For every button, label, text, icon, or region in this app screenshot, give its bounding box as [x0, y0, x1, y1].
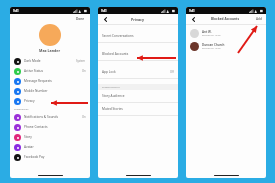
- button[interactable]: Story Audience: [98, 90, 178, 102]
- staticText: Dark Mode: [24, 59, 41, 63]
- staticText: STORIES PRIVACY: [102, 86, 121, 89]
- button[interactable]: Notifications & Sounds: [10, 112, 90, 122]
- staticText: Done: [76, 17, 85, 21]
- button[interactable]: Blocked Accounts: [98, 48, 178, 60]
- button[interactable]: Avatar: [10, 142, 90, 152]
- button[interactable]: Duncan Church: [186, 40, 266, 53]
- staticText: Mobile Number: [24, 89, 48, 93]
- staticText: Message Requests: [24, 79, 52, 83]
- button[interactable]: Ant W.: [186, 27, 266, 40]
- staticText: Notifications & Sounds: [24, 115, 59, 119]
- button[interactable]: Dark Mode: [10, 56, 90, 66]
- staticText: On: [82, 115, 86, 119]
- staticText: PREFERENCES: [14, 108, 29, 111]
- staticText: Blocked on 12/05: [202, 47, 221, 50]
- staticText: Ant W.: [202, 30, 212, 34]
- staticText: Privacy: [131, 17, 145, 22]
- button[interactable]: Back: [189, 15, 197, 23]
- staticText: Privacy: [24, 99, 35, 103]
- staticText: Muted Stories: [102, 107, 123, 111]
- staticText: 9:41: [13, 9, 19, 13]
- button[interactable]: Phone Contacts: [10, 122, 90, 132]
- staticText: Story: [24, 135, 32, 139]
- staticText: Avatar: [24, 145, 34, 149]
- staticText: Secret Conversations: [102, 34, 134, 38]
- staticText: Duncan Church: [202, 43, 225, 47]
- button[interactable]: Active Status: [10, 66, 90, 76]
- staticText: Off: [170, 70, 174, 74]
- button[interactable]: Story: [10, 132, 90, 142]
- staticText: Facebook Pay: [24, 155, 45, 159]
- button[interactable]: Message Requests: [10, 76, 90, 86]
- staticText: Blocked Accounts: [211, 17, 240, 21]
- button[interactable]: Privacy: [10, 96, 90, 106]
- button[interactable]: Back: [101, 15, 109, 23]
- staticText: Phone Contacts: [24, 125, 48, 129]
- staticText: Active Status: [24, 69, 44, 73]
- button[interactable]: Mobile Number: [10, 86, 90, 96]
- staticText: App Lock: [102, 70, 116, 74]
- staticText: Max Lander: [39, 48, 61, 53]
- button[interactable]: Done: [75, 16, 86, 22]
- staticText: System: [76, 59, 86, 63]
- staticText: Story Audience: [102, 94, 125, 98]
- staticText: Blocked Accounts: [102, 52, 129, 56]
- button[interactable]: Facebook Pay: [10, 152, 90, 162]
- staticText: On: [82, 69, 86, 73]
- button[interactable]: Profile photo: [39, 24, 61, 46]
- staticText: 9:41: [101, 9, 107, 13]
- button[interactable]: Muted Stories: [98, 103, 178, 115]
- button[interactable]: App Lock: [98, 66, 178, 78]
- staticText: Add: [256, 17, 262, 21]
- staticText: 9:41: [189, 9, 195, 13]
- button[interactable]: Secret Conversations: [98, 30, 178, 42]
- button[interactable]: Add: [255, 16, 263, 22]
- staticText: Blocked on 12/05: [202, 34, 221, 37]
